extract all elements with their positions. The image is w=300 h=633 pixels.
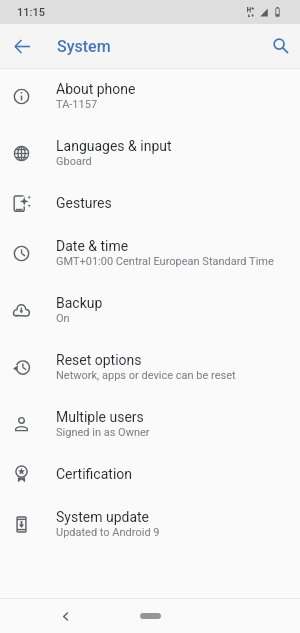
- staticText: Network, apps or device can be reset: [56, 369, 236, 382]
- staticText: GMT+01:00 Central European Standard Time: [56, 255, 274, 268]
- staticText: 11:15: [17, 6, 45, 19]
- button[interactable]: Multiple users: [0, 397, 300, 454]
- staticText: Signed in as Owner: [56, 426, 150, 439]
- staticText: Reset options: [56, 352, 142, 368]
- button[interactable]: Date & time: [0, 226, 300, 283]
- button[interactable]: Reset options: [0, 340, 300, 397]
- button[interactable]: Languages & input: [0, 126, 300, 183]
- staticText: Date & time: [56, 238, 129, 254]
- staticText: Multiple users: [56, 409, 144, 425]
- staticText: On: [56, 312, 70, 325]
- button[interactable]: About phone: [0, 69, 300, 126]
- button[interactable]: System update: [0, 497, 300, 554]
- staticText: Backup: [56, 295, 103, 311]
- button[interactable]: Back: [0, 24, 44, 68]
- staticText: System: [57, 37, 111, 56]
- button[interactable]: Search: [256, 24, 300, 68]
- staticText: Updated to Android 9: [56, 526, 160, 539]
- button[interactable]: Gestures: [0, 183, 300, 226]
- staticText: TA-1157: [56, 98, 98, 111]
- button[interactable]: Back: [53, 604, 77, 628]
- button[interactable]: Backup: [0, 283, 300, 340]
- staticText: Gboard: [56, 155, 92, 168]
- button[interactable]: Home: [140, 613, 161, 619]
- staticText: Languages & input: [56, 138, 172, 154]
- staticText: System update: [56, 509, 150, 525]
- button[interactable]: Certification: [0, 454, 300, 497]
- staticText: Certification: [56, 466, 133, 482]
- staticText: Gestures: [56, 195, 112, 211]
- staticText: About phone: [56, 81, 136, 97]
